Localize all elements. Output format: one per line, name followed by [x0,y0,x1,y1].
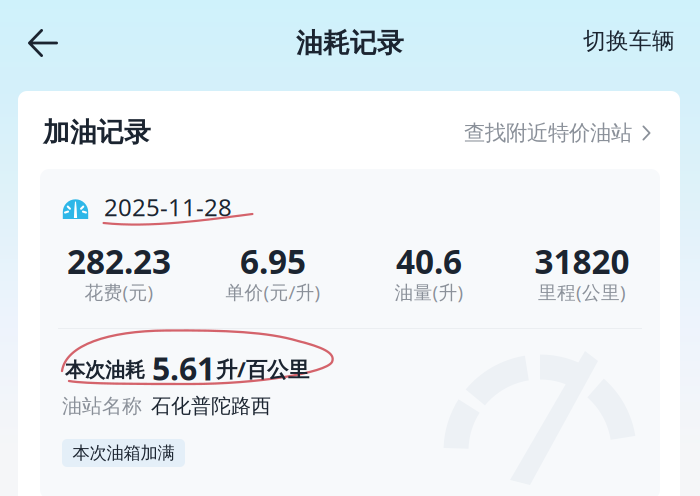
staticText: 油耗记录 [296,27,404,59]
staticText: 31820 [534,239,629,283]
staticText: 40.6 [396,239,462,283]
staticText: 油量(升) [394,280,463,304]
staticText: 单价(元/升) [225,280,320,304]
staticText: 本次油箱加满 [72,442,174,464]
staticText: 查找附近特价油站 [464,120,632,146]
staticText: 升/百公里 [216,355,309,383]
button[interactable]: 查找附近特价油站 [464,113,651,153]
staticText: 油站名称 [62,394,142,418]
button[interactable]: Back [13,15,73,71]
staticText: 本次油耗 [65,358,145,382]
staticText: 282.23 [67,239,171,283]
staticText: 石化普陀路西 [151,394,271,418]
button[interactable]: 切换车辆 [574,19,684,63]
staticText: 5.61 [152,347,215,389]
staticText: 花费(元) [84,280,153,304]
staticText: 6.95 [240,239,306,283]
staticText: 2025-11-28 [104,191,232,223]
staticText: 切换车辆 [583,27,675,55]
staticText: 加油记录 [43,116,151,149]
staticText: 里程(公里) [538,280,626,304]
